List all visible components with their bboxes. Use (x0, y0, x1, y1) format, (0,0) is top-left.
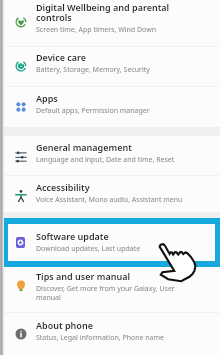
staticText: Apps (36, 92, 58, 104)
button[interactable] (0, 226, 220, 256)
staticText: Screen time, App timers, Wind Down (36, 25, 156, 35)
button[interactable] (0, 315, 220, 345)
button[interactable] (0, 47, 220, 77)
button[interactable] (0, 0, 220, 27)
staticText: Language and input, Date and time, Reset (36, 155, 175, 165)
button[interactable] (0, 137, 220, 167)
staticText: Voice Assistant, Mono audio, Assistant m… (36, 195, 183, 205)
staticText: Accessibility (36, 181, 90, 193)
staticText: Discover, Get more from your Galaxy, Use… (36, 284, 175, 302)
staticText: Download updates, Last update (36, 244, 141, 254)
staticText: Software update (36, 230, 109, 242)
staticText: General management (36, 141, 132, 153)
staticText: Device care (36, 51, 87, 63)
staticText: Tips and user manual (36, 270, 130, 282)
button[interactable] (0, 266, 220, 296)
button[interactable] (0, 88, 220, 118)
staticText: Digital Wellbeing and parental controls (36, 1, 170, 23)
staticText: Battery, Storage, Memory, Security (36, 65, 150, 75)
staticText: Status, Legal information, Phone name (36, 333, 165, 343)
button[interactable] (0, 177, 220, 207)
staticText: Default apps, Permission manager (36, 106, 150, 116)
staticText: About phone (36, 319, 93, 331)
